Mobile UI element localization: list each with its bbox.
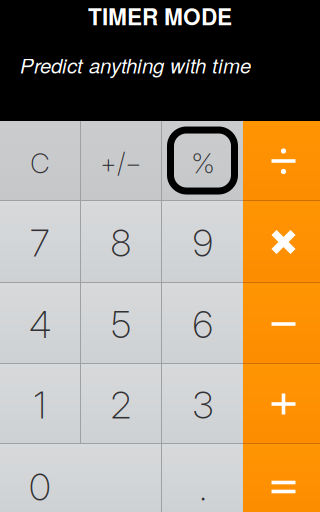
button[interactable]: 3 <box>162 364 243 444</box>
staticText: 1 <box>33 382 46 428</box>
button[interactable]: 9 <box>162 201 243 283</box>
button[interactable]: 1 <box>0 364 80 444</box>
staticText: . <box>199 464 207 510</box>
staticText: 7 <box>30 220 50 266</box>
button[interactable]: . <box>162 444 243 512</box>
button[interactable]: C <box>0 121 80 201</box>
staticText: 8 <box>110 220 131 266</box>
button[interactable]: % <box>162 121 243 201</box>
staticText: 9 <box>192 220 213 266</box>
button[interactable]: 2 <box>81 364 161 444</box>
button[interactable]: Divide <box>243 121 320 201</box>
button[interactable]: 0 <box>0 444 161 512</box>
button[interactable]: 6 <box>162 283 243 364</box>
staticText: 5 <box>111 302 131 347</box>
staticText: 0 <box>29 464 51 510</box>
staticText: 3 <box>192 382 213 428</box>
staticText: +/− <box>100 147 142 179</box>
button[interactable]: +/− <box>81 121 161 201</box>
button[interactable]: 5 <box>81 283 161 364</box>
staticText: 6 <box>192 302 213 347</box>
button[interactable]: 7 <box>0 201 80 283</box>
button[interactable]: Multiply <box>243 201 320 283</box>
button[interactable]: Plus <box>243 364 320 444</box>
staticText: % <box>191 146 215 180</box>
button[interactable]: Equals <box>243 444 320 512</box>
staticText: TIMER MODE <box>88 0 232 32</box>
staticText: C <box>30 146 50 180</box>
staticText: 2 <box>110 382 131 428</box>
button[interactable]: 4 <box>0 283 80 364</box>
staticText: Predict anything with time <box>20 51 251 79</box>
staticText: 4 <box>29 302 51 347</box>
button[interactable]: 8 <box>81 201 161 283</box>
button[interactable]: Minus <box>243 283 320 364</box>
